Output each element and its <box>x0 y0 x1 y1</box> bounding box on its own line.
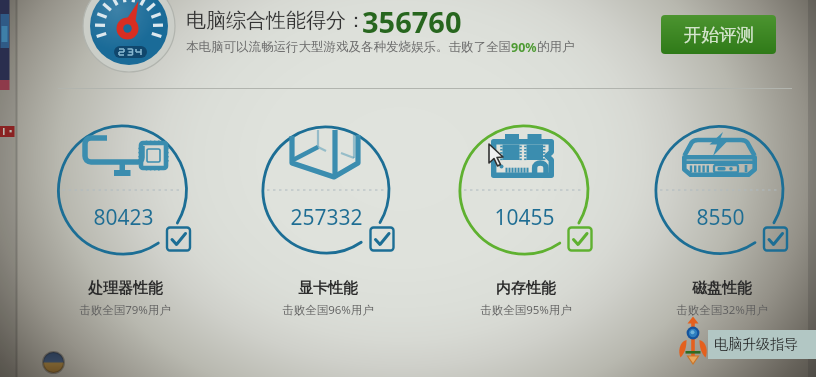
staticText: 8550 <box>696 203 745 229</box>
staticText: 257332 <box>290 203 363 229</box>
staticText: 内存性能 <box>496 279 556 298</box>
button[interactable]: 显卡性能 <box>258 279 398 323</box>
button[interactable]: 电脑升级指导 <box>676 314 712 366</box>
staticText: 开始评测 <box>684 24 754 46</box>
button[interactable]: 电脑升级指导 <box>708 330 816 359</box>
staticText: 90% <box>511 39 537 56</box>
staticText: 10455 <box>494 203 555 229</box>
staticText: 电脑综合性能得分： <box>186 8 366 33</box>
button[interactable]: 电脑综合性能得分： <box>186 8 366 33</box>
button[interactable]: 内存性能 <box>456 279 596 323</box>
button[interactable]: 开始评测 <box>661 15 776 54</box>
staticText: 击败全国32%用户 <box>676 302 768 318</box>
staticText: 电脑升级指导 <box>714 336 798 354</box>
staticText: 本电脑可以流畅运行大型游戏及各种发烧娱乐。击败了全国 <box>186 39 511 55</box>
staticText: 击败全国79%用户 <box>79 302 171 318</box>
staticText: 击败全国95%用户 <box>480 302 572 318</box>
staticText: 显卡性能 <box>298 279 358 298</box>
staticText: 磁盘性能 <box>692 279 752 298</box>
staticText: 的用户 <box>537 39 575 55</box>
staticText: 击败全国96%用户 <box>282 302 374 318</box>
staticText: 处理器性能 <box>88 279 163 298</box>
button[interactable]: 磁盘性能 <box>652 279 792 323</box>
staticText: 80423 <box>93 203 154 229</box>
button[interactable]: 处理器性能 <box>55 279 195 323</box>
staticText: 356760 <box>362 2 462 41</box>
